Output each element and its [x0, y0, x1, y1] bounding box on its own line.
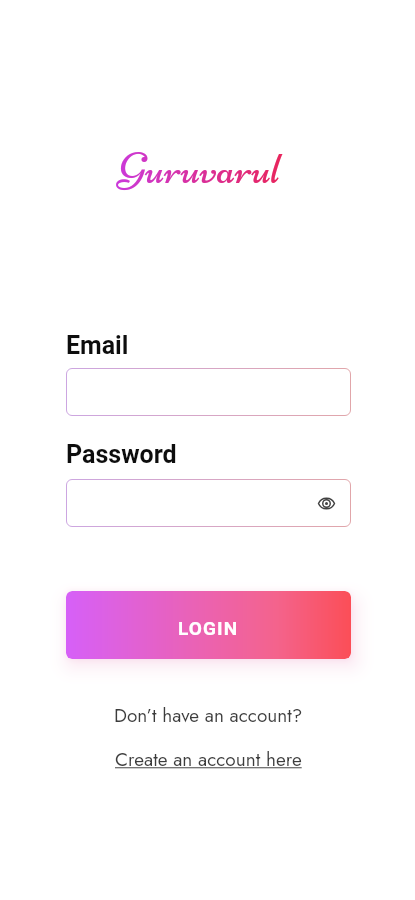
- staticText: Don’t have an account?: [114, 702, 303, 729]
- button[interactable]: Create an account here: [115, 746, 302, 773]
- staticText: Password: [66, 440, 177, 469]
- staticText: LOGIN: [178, 617, 239, 639]
- button[interactable]: Show password: [66, 479, 351, 527]
- staticText: Email: [66, 331, 129, 360]
- button[interactable]: [66, 368, 351, 416]
- staticText: Guruvarul: [118, 142, 280, 195]
- button[interactable]: LOGIN: [66, 591, 351, 659]
- button[interactable]: Show password: [313, 490, 339, 516]
